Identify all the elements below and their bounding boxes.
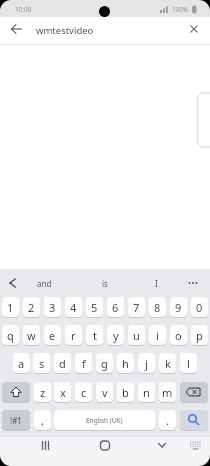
button[interactable] (0, 17, 210, 44)
button[interactable]: m (159, 382, 176, 403)
button[interactable]: r (65, 325, 82, 346)
button[interactable]: and (14, 275, 74, 291)
button[interactable] (6, 22, 26, 36)
button[interactable]: h (117, 353, 134, 374)
button[interactable] (180, 382, 208, 403)
button[interactable]: 9 (170, 297, 187, 318)
staticText: v (102, 385, 108, 400)
button[interactable]: b (117, 382, 134, 403)
button[interactable]: t (86, 325, 103, 346)
staticText: and (37, 278, 52, 289)
staticText: q (7, 328, 14, 343)
button[interactable]: o (170, 325, 187, 346)
button[interactable]: 5 (86, 297, 103, 318)
staticText: 8 (154, 300, 161, 315)
staticText: f (82, 356, 86, 371)
staticText: 1 (7, 300, 14, 315)
staticText: i (156, 328, 159, 343)
staticText: 10:00 (15, 5, 32, 14)
staticText: 6 (112, 300, 119, 315)
button[interactable]: x (54, 382, 71, 403)
button[interactable]: 2 (23, 297, 40, 318)
button[interactable]: 8 (149, 297, 166, 318)
staticText: 5 (91, 300, 98, 315)
button[interactable]: 1 (2, 297, 19, 318)
staticText: o (175, 328, 182, 343)
button[interactable]: s (33, 353, 50, 374)
button[interactable]: 0 (191, 297, 208, 318)
button[interactable]: u (128, 325, 145, 346)
staticText: t (93, 328, 97, 343)
staticText: z (40, 385, 46, 400)
button[interactable]: g (96, 353, 113, 374)
staticText: a (18, 356, 25, 371)
button[interactable]: c (75, 382, 92, 403)
staticText: b (122, 385, 129, 400)
button[interactable]: n (138, 382, 155, 403)
staticText: 100% (172, 5, 189, 14)
staticText: c (81, 385, 87, 400)
button[interactable]: j (138, 353, 155, 374)
staticText: e (49, 328, 56, 343)
button[interactable]: w (23, 325, 40, 346)
button[interactable]: 4 (65, 297, 82, 318)
button[interactable]: f (75, 353, 92, 374)
button[interactable]: , (34, 410, 51, 431)
staticText: I (155, 278, 158, 289)
button[interactable] (36, 438, 56, 456)
staticText: wmtestvideo (36, 24, 94, 37)
staticText: r (71, 328, 76, 343)
staticText: w (27, 328, 36, 343)
staticText: n (143, 385, 150, 400)
button[interactable]: l (180, 353, 197, 374)
button[interactable]: d (54, 353, 71, 374)
button[interactable]: I (126, 275, 186, 291)
staticText: English (UK) (86, 416, 123, 425)
staticText: u (133, 328, 140, 343)
staticText: . (166, 413, 169, 428)
button[interactable] (95, 438, 115, 456)
staticText: 4 (70, 300, 77, 315)
staticText: 3 (49, 300, 56, 315)
staticText: y (113, 328, 119, 343)
staticText: m (162, 385, 173, 400)
button[interactable] (2, 271, 24, 295)
staticText: l (187, 356, 190, 371)
button[interactable]: p (191, 325, 208, 346)
button[interactable]: y (107, 325, 124, 346)
button[interactable] (186, 438, 206, 456)
button[interactable]: q (2, 325, 19, 346)
staticText: 2 (28, 300, 35, 315)
staticText: j (145, 356, 148, 371)
button[interactable]: 7 (128, 297, 145, 318)
staticText: is (102, 278, 108, 289)
button[interactable] (2, 382, 30, 403)
button[interactable]: !#1 (2, 410, 30, 431)
button[interactable]: v (96, 382, 113, 403)
button[interactable]: . (159, 410, 176, 431)
button[interactable]: 3 (44, 297, 61, 318)
button[interactable]: English (UK) (54, 410, 155, 431)
button[interactable] (186, 22, 202, 36)
button[interactable]: a (13, 353, 30, 374)
button[interactable]: z (34, 382, 51, 403)
staticText: g (101, 356, 108, 371)
staticText: h (122, 356, 129, 371)
button[interactable] (180, 410, 208, 431)
button[interactable] (152, 438, 172, 456)
button[interactable]: e (44, 325, 61, 346)
staticText: x (60, 385, 66, 400)
staticText: p (196, 328, 203, 343)
staticText: 0 (196, 300, 203, 315)
button[interactable]: 6 (107, 297, 124, 318)
staticText: 7 (133, 300, 140, 315)
staticText: d (59, 356, 66, 371)
staticText: !#1 (10, 415, 22, 426)
button[interactable]: i (149, 325, 166, 346)
staticText: s (39, 356, 45, 371)
staticText: 9 (175, 300, 182, 315)
button[interactable]: is (75, 275, 135, 291)
button[interactable]: k (159, 353, 176, 374)
staticText: , (41, 413, 44, 428)
staticText: k (165, 356, 171, 371)
